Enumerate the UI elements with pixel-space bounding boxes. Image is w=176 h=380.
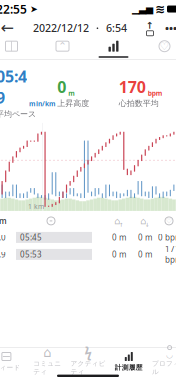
staticText: アクティビティ bbox=[70, 359, 105, 376]
staticText: min/km bbox=[29, 99, 56, 108]
staticText: ⌂ bbox=[114, 216, 120, 226]
staticText: 上昇高度 bbox=[57, 98, 89, 108]
staticText: 0 bpm bbox=[158, 232, 176, 243]
staticText: ↓ bbox=[145, 222, 149, 228]
staticText: ↑ bbox=[119, 222, 123, 228]
staticText: 170 bbox=[119, 76, 146, 97]
staticText: 0 m bbox=[112, 232, 126, 243]
button[interactable]: Splits bbox=[88, 38, 139, 59]
staticText: 22:55 bbox=[0, 1, 27, 17]
button[interactable]: 1.0 bbox=[0, 229, 176, 246]
staticText: 05:53 bbox=[20, 249, 42, 260]
staticText: 0 m bbox=[138, 232, 152, 243]
staticText: ↑ bbox=[146, 20, 154, 31]
staticText: 05:45 bbox=[20, 232, 42, 243]
button[interactable]: 1.9 bbox=[0, 246, 176, 263]
staticText: プロフィール bbox=[152, 359, 176, 376]
staticText: km bbox=[0, 216, 7, 226]
button[interactable]: Map bbox=[0, 38, 37, 59]
staticText: ▁▃▅ bbox=[132, 4, 153, 14]
button[interactable]: ◡ bbox=[149, 343, 176, 376]
button[interactable]: Heart rate bbox=[139, 38, 176, 59]
staticText: ➤ bbox=[27, 4, 38, 14]
staticText: ≋ bbox=[155, 2, 165, 16]
staticText: 05:49 bbox=[0, 66, 27, 108]
staticText: フィード bbox=[0, 363, 20, 372]
staticText: m bbox=[68, 89, 75, 97]
staticText: 1 km bbox=[28, 202, 44, 211]
button[interactable]: More bbox=[160, 18, 176, 38]
staticText: 171 bpm bbox=[165, 244, 176, 265]
staticText: 計測履歴 bbox=[115, 363, 143, 372]
staticText: ← bbox=[0, 19, 13, 37]
staticText: 1.0 bbox=[0, 232, 6, 243]
staticText: 0 m bbox=[112, 249, 126, 260]
button[interactable]: フィード bbox=[0, 347, 27, 372]
staticText: ⌂ bbox=[140, 216, 146, 226]
button[interactable]: ⌂ bbox=[27, 343, 68, 376]
button[interactable]: 計測履歴 bbox=[108, 347, 149, 372]
staticText: コミュニティ bbox=[33, 359, 61, 376]
button[interactable]: Graph bbox=[37, 38, 88, 59]
staticText: ♡ bbox=[166, 217, 172, 225]
staticText: 心拍数平均 bbox=[119, 98, 159, 108]
staticText: 平均ペース bbox=[0, 109, 36, 119]
staticText: ••• bbox=[165, 21, 176, 35]
staticText: 0 bbox=[57, 76, 66, 97]
staticText: ♡ bbox=[159, 40, 169, 52]
staticText: 1.9 bbox=[0, 249, 6, 260]
staticText: 0 m bbox=[138, 249, 152, 260]
staticText: 2022/12/12 ・ 6:54 bbox=[33, 21, 127, 35]
button[interactable]: ϟ bbox=[68, 343, 108, 376]
staticText: ϟ bbox=[84, 344, 91, 361]
staticText: ⌂ bbox=[43, 345, 51, 360]
staticText: bpm bbox=[148, 89, 163, 97]
button[interactable]: Back bbox=[0, 18, 20, 38]
staticText: ◡ bbox=[166, 350, 173, 359]
staticText: ⌃ bbox=[58, 40, 67, 52]
button[interactable]: Share bbox=[140, 18, 160, 38]
